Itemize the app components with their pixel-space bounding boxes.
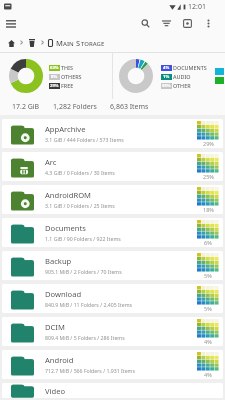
staticText: Video	[45, 386, 66, 396]
staticText: OTHER	[173, 82, 191, 89]
staticText: 4%	[204, 371, 212, 378]
staticText: 8%	[51, 74, 58, 80]
staticText: 6%	[204, 239, 212, 246]
staticText: 4%	[163, 65, 170, 71]
staticText: 4.3 GiB / 0 Folders / 30 Items	[45, 169, 115, 176]
button[interactable]: AppArchive	[2, 119, 223, 148]
staticText: TORAGE	[81, 40, 105, 48]
staticText: Android	[45, 355, 74, 365]
staticText: Arc	[45, 157, 57, 167]
staticText: 12:01	[188, 2, 206, 12]
button[interactable]: Search	[135, 14, 156, 33]
staticText: 6,863 Items	[110, 102, 149, 112]
button[interactable]: DCIM	[2, 317, 223, 346]
staticText: 5%	[204, 305, 212, 312]
staticText: 3.1 GiB / 444 Folders / 573 Items	[45, 136, 124, 143]
button[interactable]: Download	[2, 284, 223, 313]
staticText: 840.9 MiB / 11 Folders / 2,405 Items	[45, 301, 132, 308]
button[interactable]: Home	[5, 37, 17, 49]
staticText: M	[56, 38, 63, 48]
button[interactable]: Arc	[2, 152, 223, 181]
staticText: S	[76, 38, 81, 48]
button[interactable]: Video	[2, 383, 223, 398]
staticText: Download	[45, 289, 82, 299]
staticText: 809.4 MiB / 5 Folders / 286 Items	[45, 334, 125, 341]
staticText: 25%	[203, 173, 214, 180]
staticText: 1%	[163, 74, 170, 80]
staticText: 905.1 MiB / 2 Folders / 70 Items	[45, 268, 122, 275]
staticText: 3.1 GiB / 0 Folders / 25 Items	[45, 202, 115, 209]
staticText: THIS	[61, 64, 73, 71]
staticText: 18%	[203, 206, 214, 213]
staticText: OTHERS	[61, 73, 82, 80]
staticText: AndroidROM	[45, 190, 91, 200]
staticText: DOCUMENTS	[173, 64, 207, 71]
staticText: 1.1 GiB / 90 Folders / 922 Items	[45, 235, 121, 242]
staticText: Backup	[45, 256, 72, 266]
staticText: 5%	[204, 272, 212, 279]
button[interactable]: Android	[2, 350, 223, 379]
staticText: 712.7 MiB / 566 Folders / 1,931 Items	[45, 367, 135, 374]
button[interactable]: Sort	[156, 14, 177, 33]
button[interactable]: More options	[198, 14, 219, 33]
staticText: Documents	[45, 223, 86, 233]
button[interactable]: Backup	[2, 251, 223, 280]
staticText: 29%	[203, 140, 214, 147]
button[interactable]: AndroidROM	[2, 185, 223, 214]
staticText: 63%	[50, 65, 59, 71]
staticText: AUDIO	[173, 73, 191, 80]
button[interactable]: Menu	[0, 14, 22, 33]
staticText: FREE	[61, 82, 74, 89]
staticText: AIN	[63, 40, 74, 48]
staticText: DCIM	[45, 322, 65, 332]
button[interactable]: Documents	[2, 218, 223, 247]
staticText: 4%	[204, 338, 212, 345]
staticText: 1,282 Folders	[53, 102, 97, 112]
button[interactable]: Device storage	[26, 37, 38, 49]
button[interactable]: Select all	[177, 14, 198, 33]
button[interactable]: M	[47, 38, 105, 48]
staticText: 17.2 GiB	[12, 102, 40, 112]
staticText: AppArchive	[45, 124, 86, 134]
staticText: 95%	[162, 83, 171, 89]
staticText: 29%	[50, 83, 59, 89]
